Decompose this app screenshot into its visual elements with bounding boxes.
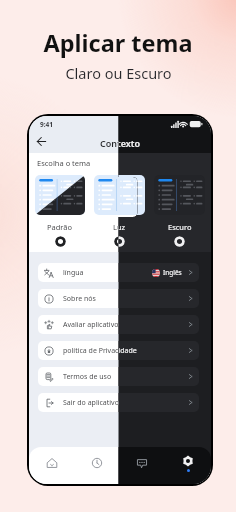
staticText: língua xyxy=(63,268,84,278)
staticText: Inglês xyxy=(163,268,182,277)
button[interactable]: Avaliar aplicativo xyxy=(38,315,199,334)
button[interactable]: Padrão xyxy=(31,175,89,247)
staticText: Contexto xyxy=(100,137,141,149)
button[interactable]: Back xyxy=(34,134,49,149)
button[interactable]: Luz xyxy=(114,236,125,247)
button[interactable]: língua xyxy=(38,263,199,282)
button[interactable]: Escuro xyxy=(150,175,209,247)
button[interactable]: Sobre nós xyxy=(38,289,199,308)
staticText: Aplicar tema xyxy=(43,27,193,59)
button[interactable]: Avaliar aplicativo xyxy=(38,315,199,334)
button[interactable]: Chat xyxy=(119,447,165,479)
button[interactable]: Escuro xyxy=(174,236,185,247)
button[interactable]: Sair do aplicativo xyxy=(38,393,199,412)
button[interactable]: Home xyxy=(29,447,74,479)
staticText: língua xyxy=(63,268,84,278)
staticText: política de Privacidade xyxy=(63,346,137,356)
staticText: Luz xyxy=(113,222,126,232)
button[interactable]: Luz xyxy=(114,236,125,247)
staticText: Padrão xyxy=(47,222,73,232)
staticText: Sair do aplicativo xyxy=(63,398,119,408)
staticText: 9:41 xyxy=(40,120,53,129)
staticText: Luz xyxy=(113,222,126,232)
staticText: Inglês xyxy=(163,268,182,277)
button[interactable]: Termos de uso xyxy=(38,367,199,386)
button[interactable]: Settings xyxy=(165,447,211,479)
staticText: Avaliar aplicativo xyxy=(63,320,119,330)
button[interactable]: Padrão xyxy=(55,236,66,247)
staticText: Escolha o tema xyxy=(37,158,91,168)
button[interactable]: Home xyxy=(29,447,74,479)
button[interactable]: Chat xyxy=(119,447,165,479)
button[interactable]: Escuro xyxy=(150,175,209,247)
staticText: Avaliar aplicativo xyxy=(63,320,119,330)
staticText: política de Privacidade xyxy=(63,346,137,356)
staticText: Sobre nós xyxy=(63,294,96,304)
staticText: Escuro xyxy=(168,222,192,232)
button[interactable]: Escuro xyxy=(174,236,185,247)
button[interactable]: política de Privacidade xyxy=(38,341,199,360)
staticText: 9:41 xyxy=(40,120,53,129)
button[interactable]: Termos de uso xyxy=(38,367,199,386)
button[interactable]: History xyxy=(74,447,119,479)
staticText: Escolha o tema xyxy=(37,158,91,168)
staticText: Contexto xyxy=(100,137,141,149)
button[interactable]: Luz xyxy=(90,175,149,247)
button[interactable]: Sair do aplicativo xyxy=(38,393,199,412)
staticText: Escuro xyxy=(168,222,192,232)
staticText: Sair do aplicativo xyxy=(63,398,119,408)
staticText: Claro ou Escuro xyxy=(65,63,172,83)
button[interactable]: Luz xyxy=(90,175,149,247)
button[interactable]: Padrão xyxy=(31,175,89,247)
staticText: Padrão xyxy=(47,222,73,232)
button[interactable]: Settings xyxy=(165,447,211,479)
button[interactable]: política de Privacidade xyxy=(38,341,199,360)
button[interactable]: History xyxy=(74,447,119,479)
button[interactable]: Sobre nós xyxy=(38,289,199,308)
button[interactable]: Padrão xyxy=(55,236,66,247)
staticText: Termos de uso xyxy=(63,372,112,382)
button[interactable]: língua xyxy=(38,263,199,282)
staticText: Termos de uso xyxy=(63,372,112,382)
button[interactable]: Back xyxy=(34,134,49,149)
staticText: Sobre nós xyxy=(63,294,96,304)
